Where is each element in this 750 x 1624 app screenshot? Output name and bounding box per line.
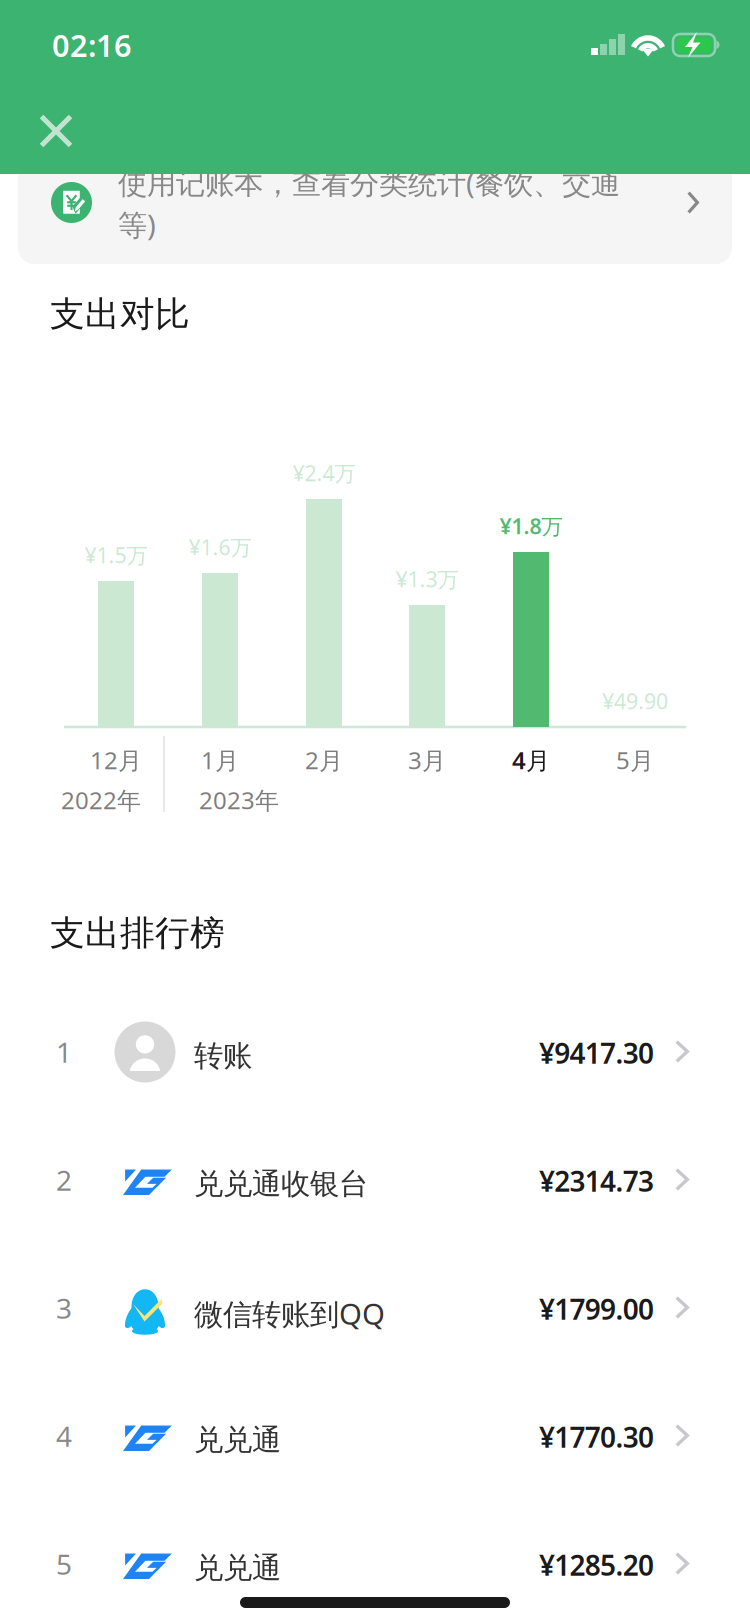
staticText: 2022年 bbox=[61, 784, 141, 816]
staticText: 3 bbox=[56, 1289, 72, 1327]
staticText: ¥49.90 bbox=[602, 687, 668, 715]
staticText: 5 bbox=[56, 1545, 72, 1583]
staticText: ¥1770.30 bbox=[539, 1418, 654, 1456]
staticText: ¥1.5万 bbox=[84, 541, 147, 569]
button[interactable]: 4 bbox=[0, 1372, 750, 1500]
staticText: 2023年 bbox=[199, 784, 279, 816]
staticText: ¥1.3万 bbox=[395, 565, 458, 593]
staticText: 2月 bbox=[305, 744, 343, 776]
staticText: 转账 bbox=[194, 1038, 252, 1074]
staticText: ¥1.8万 bbox=[499, 512, 562, 540]
staticText: 兑兑通收银台 bbox=[194, 1166, 368, 1202]
button[interactable]: 3 bbox=[0, 1244, 750, 1372]
staticText: 5月 bbox=[616, 744, 654, 776]
staticText: ¥1799.00 bbox=[539, 1290, 654, 1328]
staticText: 1月 bbox=[201, 744, 239, 776]
button[interactable]: 1 bbox=[0, 988, 750, 1116]
staticText: 4月 bbox=[512, 744, 550, 776]
staticText: ¥1.6万 bbox=[188, 533, 251, 561]
button[interactable]: 5 bbox=[0, 1500, 750, 1624]
button[interactable]: Close bbox=[16, 91, 96, 171]
staticText: 3月 bbox=[408, 744, 446, 776]
staticText: 兑兑通 bbox=[194, 1422, 281, 1458]
staticText: ¥1285.20 bbox=[539, 1546, 654, 1584]
staticText: 2 bbox=[56, 1161, 72, 1199]
staticText: 12月 bbox=[90, 744, 142, 776]
staticText: 支出排行榜 bbox=[50, 912, 225, 955]
staticText: 02:16 bbox=[52, 25, 132, 65]
staticText: 4 bbox=[56, 1417, 72, 1455]
staticText: ¥2.4万 bbox=[292, 459, 355, 487]
staticText: 使用记账本，查看分类统计(餐饮、交通 bbox=[118, 163, 620, 202]
staticText: ¥2314.73 bbox=[539, 1162, 654, 1200]
staticText: 等) bbox=[118, 205, 156, 244]
staticText: 兑兑通 bbox=[194, 1550, 281, 1586]
button[interactable]: 2 bbox=[0, 1116, 750, 1244]
staticText: ¥9417.30 bbox=[539, 1034, 654, 1072]
staticText: 支出对比 bbox=[50, 293, 190, 336]
staticText: 微信转账到QQ bbox=[194, 1294, 385, 1333]
staticText: 1 bbox=[56, 1033, 72, 1071]
button[interactable]: 使用记账本，查看分类统计(餐饮、交通 bbox=[18, 134, 732, 264]
